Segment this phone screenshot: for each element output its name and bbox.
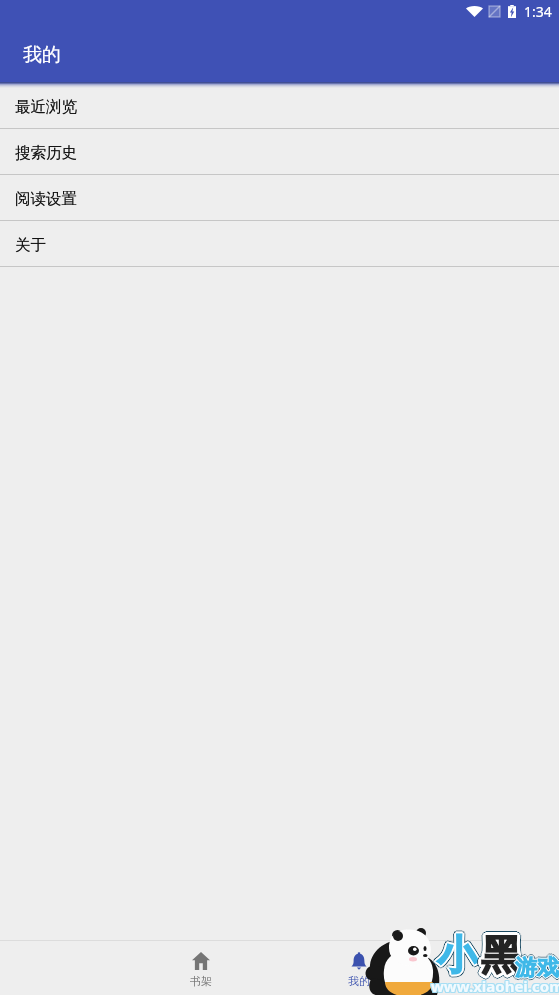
staticText: 小 — [439, 932, 479, 982]
staticText: 黑 — [483, 928, 523, 978]
staticText: 黑 — [481, 932, 521, 982]
staticText: 黑 — [483, 931, 523, 981]
staticText: 黑 — [479, 928, 519, 978]
staticText: 小 — [437, 931, 477, 981]
button[interactable]: 书架 — [122, 941, 280, 995]
staticText: 小 — [439, 930, 479, 980]
staticText: 黑 — [479, 928, 519, 978]
staticText: 小 — [437, 928, 477, 978]
staticText: 黑 — [484, 932, 524, 982]
staticText: 黑 — [481, 930, 521, 980]
staticText: 黑 — [480, 930, 520, 980]
staticText: 最近浏览 — [15, 97, 77, 117]
staticText: 黑 — [482, 929, 522, 979]
staticText: 黑 — [479, 931, 519, 981]
staticText: 黑 — [478, 928, 518, 978]
staticText: 小 — [435, 928, 475, 978]
staticText: 小 — [436, 928, 476, 978]
staticText: 黑 — [481, 926, 521, 976]
staticText: 黑 — [479, 930, 519, 980]
staticText: 小 — [437, 933, 477, 983]
staticText: 游戏 — [513, 954, 557, 982]
staticText: 小 — [436, 932, 476, 982]
staticText: 搜索历史 — [15, 143, 77, 163]
button[interactable]: 关于 — [0, 221, 559, 267]
staticText: 黑 — [483, 927, 523, 977]
staticText: www.xiaohei.com — [431, 975, 559, 995]
staticText: 黑 — [479, 932, 519, 982]
staticText: 黑 — [483, 929, 523, 979]
staticText: www.xiaohei.com — [430, 977, 559, 995]
staticText: 游戏 — [516, 955, 559, 983]
staticText: 黑 — [482, 929, 522, 979]
staticText: 游戏 — [515, 953, 559, 981]
staticText: 黑 — [480, 932, 520, 982]
button[interactable]: 我的 — [280, 941, 438, 995]
staticText: 黑 — [480, 928, 520, 978]
staticText: 黑 — [482, 931, 522, 981]
staticText: www.xiaohei.com — [432, 975, 559, 995]
staticText: 小 — [435, 932, 475, 982]
staticText: 黑 — [479, 929, 519, 979]
staticText: 游戏 — [514, 954, 558, 982]
staticText: 黑 — [480, 927, 520, 977]
staticText: 黑 — [478, 932, 518, 982]
staticText: 黑 — [482, 928, 522, 978]
staticText: 游戏 — [516, 953, 559, 981]
staticText: 游戏 — [516, 954, 559, 982]
staticText: 黑 — [479, 931, 519, 981]
staticText: 小 — [438, 930, 478, 980]
staticText: 关于 — [15, 235, 46, 255]
staticText: 小 — [439, 930, 479, 980]
staticText: 小 — [438, 930, 478, 980]
staticText: 黑 — [481, 931, 521, 981]
staticText: 小 — [437, 930, 477, 980]
button[interactable]: 搜索历史 — [0, 129, 559, 175]
staticText: 黑 — [485, 930, 525, 980]
staticText: 游戏 — [515, 953, 559, 981]
staticText: 黑 — [484, 929, 524, 979]
staticText: 我的 — [348, 974, 370, 988]
staticText: 黑 — [478, 929, 518, 979]
staticText: 游戏 — [514, 954, 558, 982]
staticText: 黑 — [482, 933, 522, 983]
staticText: 黑 — [481, 927, 521, 977]
staticText: 黑 — [480, 932, 520, 982]
button[interactable]: 阅读设置 — [0, 175, 559, 221]
staticText: www.xiaohei.com — [432, 977, 559, 995]
staticText: 黑 — [480, 929, 520, 979]
staticText: www.xiaohei.com — [430, 976, 559, 995]
staticText: 游戏 — [515, 955, 559, 983]
button[interactable]: 最近浏览 — [0, 83, 559, 129]
staticText: 黑 — [479, 927, 519, 977]
staticText: 黑 — [478, 931, 518, 981]
staticText: 小 — [439, 929, 479, 979]
staticText: 黑 — [478, 930, 518, 980]
staticText: 小 — [435, 931, 475, 981]
staticText: 小 — [436, 930, 476, 980]
staticText: 黑 — [480, 929, 520, 979]
staticText: 游戏 — [517, 954, 559, 982]
staticText: 小 — [439, 931, 479, 981]
staticText: 游戏 — [515, 955, 559, 983]
staticText: 黑 — [477, 930, 517, 980]
other: No SIM — [489, 6, 500, 17]
staticText: 黑 — [481, 928, 521, 978]
staticText: 黑 — [481, 929, 521, 979]
staticText: 游戏 — [515, 954, 559, 982]
staticText: 游戏 — [515, 952, 559, 980]
staticText: 小 — [435, 929, 475, 979]
staticText: 黑 — [483, 928, 523, 978]
staticText: 黑 — [482, 931, 522, 981]
staticText: 小 — [434, 930, 474, 980]
staticText: 游戏 — [515, 954, 559, 982]
staticText: 黑 — [482, 932, 522, 982]
staticText: 小 — [437, 928, 477, 978]
staticText: www.xiaohei.com — [431, 977, 559, 995]
staticText: 黑 — [481, 933, 521, 983]
staticText: 黑 — [481, 930, 521, 980]
staticText: 黑 — [479, 933, 519, 983]
staticText: 1:34 — [524, 2, 552, 21]
staticText: 黑 — [484, 930, 524, 980]
staticText: 黑 — [484, 928, 524, 978]
